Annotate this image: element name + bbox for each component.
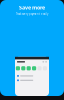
staticText: Track every payment easily	[16, 12, 48, 16]
staticText: Save more	[19, 4, 45, 11]
